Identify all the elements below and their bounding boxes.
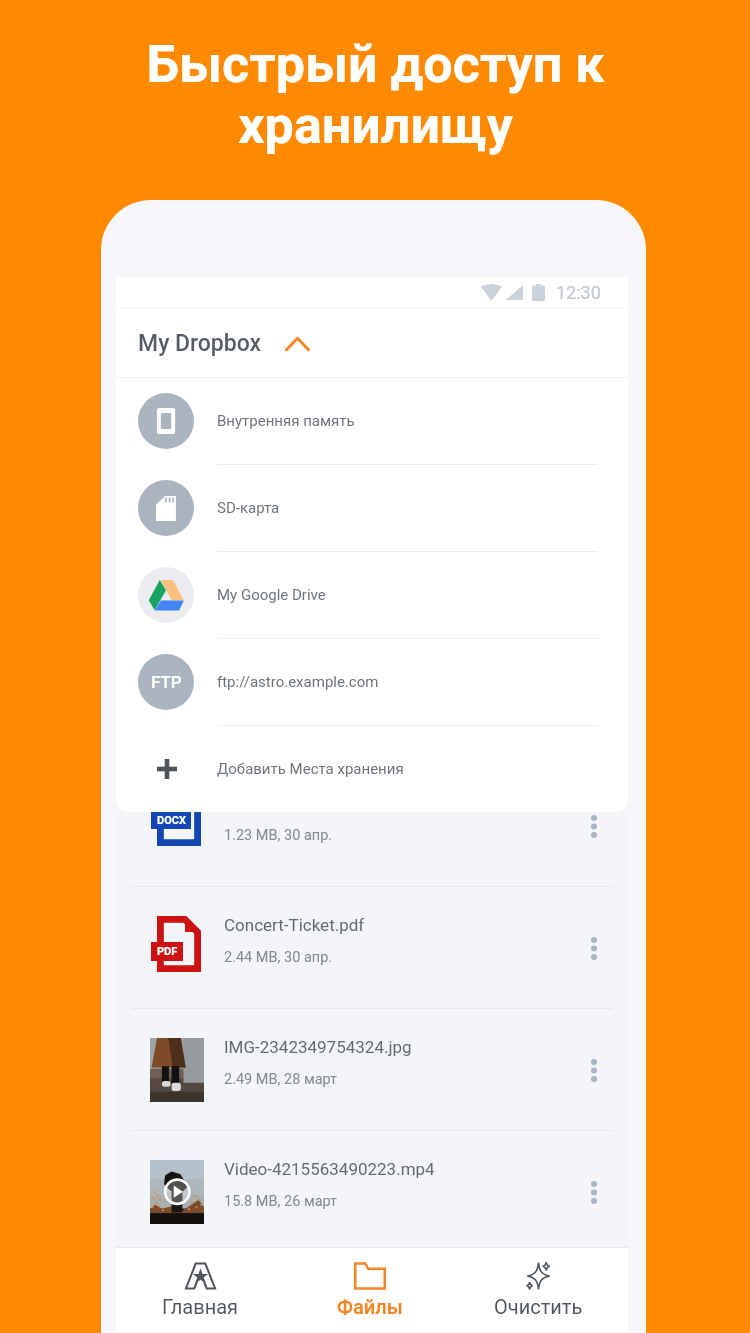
staticText: Главная bbox=[162, 1295, 239, 1318]
button[interactable]: Главная bbox=[116, 1248, 285, 1318]
button[interactable]: IMG-2342349754324.jpg bbox=[116, 1009, 628, 1130]
button[interactable]: FTP bbox=[116, 639, 628, 725]
button[interactable]: My Google Drive bbox=[116, 552, 628, 638]
staticText: IMG-2342349754324.jpg bbox=[224, 1037, 412, 1057]
button[interactable]: Файлы bbox=[285, 1248, 454, 1318]
staticText: ftp://astro.example.com bbox=[217, 673, 379, 691]
staticText: Добавить Места хранения bbox=[217, 760, 404, 778]
button[interactable]: Внутренняя память bbox=[116, 378, 628, 464]
staticText: Video-4215563490223.mp4 bbox=[224, 1159, 435, 1179]
button[interactable]: More options bbox=[570, 802, 618, 850]
staticText: 1.23 MB, 30 апр. bbox=[224, 827, 333, 844]
button[interactable]: My Dropbox bbox=[116, 309, 628, 377]
staticText: FTP bbox=[151, 672, 182, 692]
staticText: SD-карта bbox=[217, 499, 280, 517]
staticText: My Dropbox bbox=[138, 330, 262, 357]
staticText: PDF bbox=[157, 945, 178, 958]
button[interactable]: DOCX bbox=[116, 765, 628, 886]
staticText: Быстрый доступ к bbox=[146, 34, 605, 95]
staticText: 2.49 MB, 28 март bbox=[224, 1071, 338, 1088]
other: Collapse bbox=[285, 331, 310, 357]
button[interactable]: More options bbox=[570, 924, 618, 972]
staticText: 12:30 bbox=[556, 282, 601, 303]
button[interactable]: More options bbox=[570, 1046, 618, 1094]
staticText: Очистить bbox=[494, 1295, 583, 1318]
button[interactable]: More options bbox=[570, 1168, 618, 1216]
staticText: DOCX bbox=[157, 814, 186, 827]
button[interactable]: Добавить Места хранения bbox=[116, 726, 628, 812]
staticText: Concert-Ticket.pdf bbox=[224, 915, 365, 935]
button[interactable]: Video-4215563490223.mp4 bbox=[116, 1131, 628, 1252]
staticText: 15.8 MB, 26 март bbox=[224, 1193, 338, 1210]
staticText: Файлы bbox=[337, 1295, 403, 1318]
staticText: Внутренняя память bbox=[217, 412, 355, 430]
button[interactable]: Очистить bbox=[454, 1248, 623, 1318]
button[interactable]: SD-карта bbox=[116, 465, 628, 551]
button[interactable]: PDF bbox=[116, 887, 628, 1008]
staticText: хранилищу bbox=[238, 95, 513, 156]
staticText: 2.44 MB, 30 апр. bbox=[224, 949, 333, 966]
staticText: My Google Drive bbox=[217, 586, 326, 604]
